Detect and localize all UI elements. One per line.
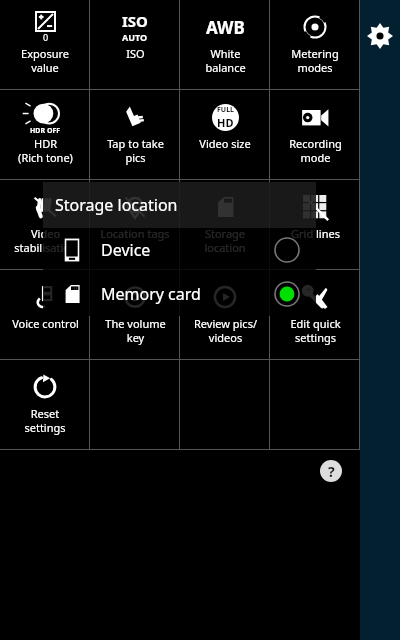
button[interactable]: AWB [180,0,270,89]
button[interactable]: Voice control [0,270,90,359]
staticText: Video size [199,136,251,151]
staticText: Review pics/ videos [194,316,257,345]
staticText: AUTO [122,31,148,43]
button[interactable]: Settings [360,16,400,56]
button[interactable]: Grid lines [270,180,360,269]
staticText: Edit quick settings [290,316,341,345]
button[interactable]: FULL [180,90,270,179]
button[interactable]: Metering modes [270,0,360,89]
button[interactable] [270,360,360,449]
staticText: FULL [217,105,234,115]
button[interactable]: Storage location [180,180,270,269]
staticText: Storage location [204,226,246,255]
button[interactable]: ISO [90,0,180,89]
staticText: 0 [43,31,49,43]
button[interactable]: Video stabilisation [0,180,90,269]
button[interactable]: Reset settings [0,360,90,449]
button[interactable]: Edit quick settings [270,270,360,359]
button[interactable] [90,360,180,449]
staticText: HDR OFF [30,126,61,134]
staticText: Exposure value [21,46,69,75]
button[interactable]: Memory card [43,272,316,316]
staticText: Recording mode [289,136,342,165]
staticText: Device [101,239,151,261]
button[interactable]: The volume key [90,270,180,359]
button[interactable]: 0 [0,0,90,89]
button[interactable]: HDR OFF [0,90,90,179]
staticText: White balance [205,46,246,75]
staticText: Tap to take pics [107,136,164,165]
staticText: Storage location [55,194,178,216]
staticText: Grid lines [291,226,340,241]
button[interactable]: Tap to take pics [90,90,180,179]
staticText: Location tags [100,226,170,241]
staticText: Reset settings [24,406,66,435]
staticText: HD [217,115,234,130]
staticText: Video stabilisation [14,226,77,255]
staticText: Voice control [12,316,79,331]
staticText: ? [328,462,335,481]
staticText: The volume key [105,316,166,345]
staticText: ISO [126,46,145,61]
button[interactable]: Review pics/ videos [180,270,270,359]
button[interactable]: Device [43,228,316,272]
button[interactable]: Help [318,458,344,484]
staticText: AWB [206,16,245,39]
staticText: Memory card [101,283,201,305]
button[interactable] [180,360,270,449]
staticText: Metering modes [291,46,339,75]
staticText: HDR (Rich tone) [18,136,73,165]
button[interactable]: Location tags [90,180,180,269]
staticText: ISO [122,11,148,31]
button[interactable]: Recording mode [270,90,360,179]
